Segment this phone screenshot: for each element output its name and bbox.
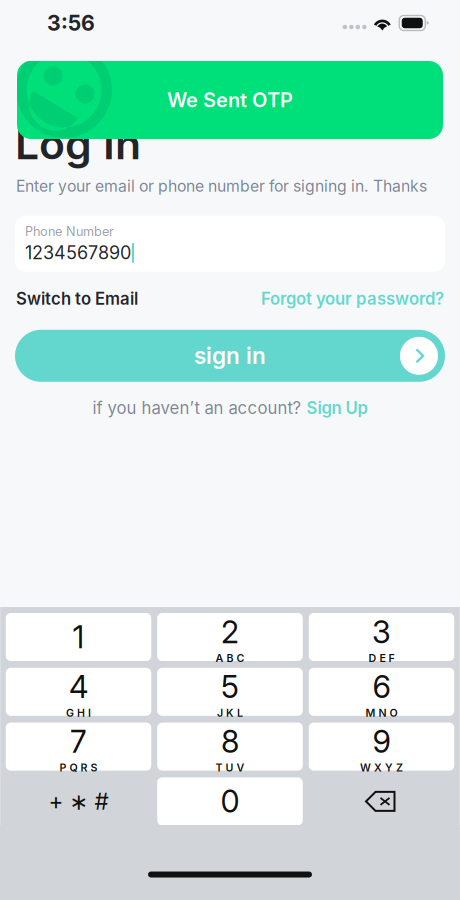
button[interactable]: Sign Up xyxy=(306,398,367,418)
staticText: 4 xyxy=(69,668,88,705)
staticText: 7 xyxy=(70,723,87,760)
staticText: 6 xyxy=(372,668,390,705)
staticText: M N O xyxy=(365,706,397,719)
staticText: Log In xyxy=(15,118,141,170)
button[interactable]: 2 xyxy=(157,613,303,661)
button[interactable]: Forgot your password? xyxy=(261,289,444,309)
button[interactable]: Phone Number xyxy=(0,216,460,272)
staticText: 1 xyxy=(72,618,84,655)
staticText: 3 xyxy=(372,613,391,651)
staticText: D E F xyxy=(368,652,394,664)
staticText: W X Y Z xyxy=(360,761,403,774)
staticText: Enter your email or phone number for sig… xyxy=(16,177,427,196)
staticText: 9 xyxy=(372,723,390,760)
staticText: 2 xyxy=(221,613,239,651)
button[interactable]: 3 xyxy=(309,613,454,661)
button[interactable]: 9 xyxy=(309,723,454,771)
staticText: 5 xyxy=(221,668,239,705)
staticText: sign in xyxy=(194,342,266,369)
staticText: Switch to Email xyxy=(16,289,138,309)
staticText: We Sent OTP xyxy=(167,88,293,112)
button[interactable]: Delete xyxy=(309,777,454,825)
staticText: G H I xyxy=(66,706,91,719)
button[interactable]: 5 xyxy=(157,668,303,716)
staticText: 1234567890 xyxy=(25,242,131,264)
button[interactable]: sign in xyxy=(0,330,460,382)
button[interactable]: 8 xyxy=(157,723,303,771)
button[interactable]: Symbols xyxy=(6,777,151,825)
button[interactable]: 7 xyxy=(6,723,151,771)
staticText: T U V xyxy=(215,761,244,774)
staticText: Forgot your password? xyxy=(261,289,444,309)
staticText: Sign Up xyxy=(306,398,367,418)
button[interactable]: Switch to Email xyxy=(16,289,138,309)
button[interactable]: 4 xyxy=(6,668,151,716)
staticText: P Q R S xyxy=(59,761,97,774)
staticText: 3:56 xyxy=(47,10,95,36)
staticText: 0 xyxy=(220,783,239,820)
button[interactable]: 1 xyxy=(6,613,151,661)
staticText: 8 xyxy=(221,723,239,760)
staticText: A B C xyxy=(215,652,244,664)
staticText: J K L xyxy=(217,706,243,719)
button[interactable]: 0 xyxy=(157,777,303,825)
staticText: + ∗ # xyxy=(48,788,108,815)
staticText: Phone Number xyxy=(25,224,114,239)
button[interactable]: 6 xyxy=(309,668,454,716)
staticText: if you haven’t an account? xyxy=(92,398,301,418)
